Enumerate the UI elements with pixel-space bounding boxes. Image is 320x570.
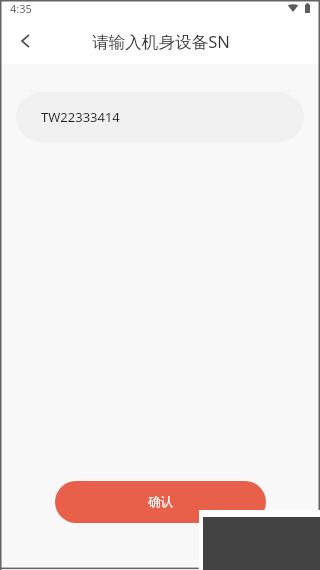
button[interactable]: 确认 bbox=[55, 481, 266, 523]
staticText: 4:35 bbox=[10, 1, 32, 16]
staticText: TW22333414 bbox=[41, 108, 120, 126]
staticText: 确认 bbox=[148, 494, 173, 510]
staticText: 请输入机身设备SN bbox=[92, 30, 230, 53]
button[interactable]: TW22333414 bbox=[16, 92, 304, 142]
button[interactable]: Back bbox=[0, 22, 46, 64]
